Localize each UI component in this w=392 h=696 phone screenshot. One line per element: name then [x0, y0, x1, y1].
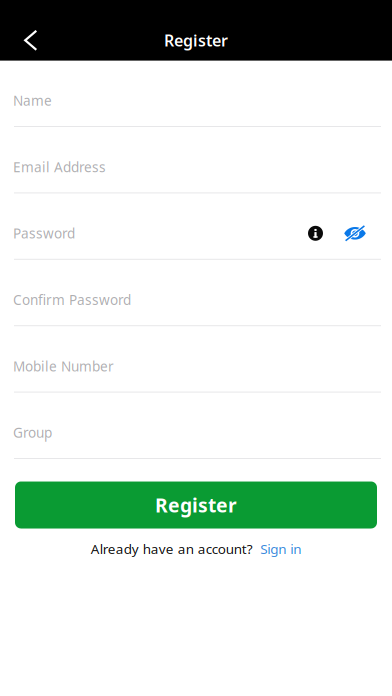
button[interactable]: Show password [344, 225, 366, 241]
button[interactable]: Password [0, 193, 392, 259]
staticText: Already have an account? [91, 540, 253, 558]
staticText: Email Address [13, 158, 106, 176]
button[interactable]: Password requirements [308, 226, 323, 241]
staticText: Group [13, 423, 52, 442]
button[interactable]: Register [15, 481, 377, 528]
staticText: Confirm Password [13, 290, 131, 309]
button[interactable]: Sign in [260, 540, 301, 558]
button[interactable]: Confirm Password [0, 260, 392, 325]
button[interactable]: Group [0, 393, 392, 458]
staticText: Password [13, 224, 75, 242]
button[interactable]: Name [0, 61, 392, 126]
staticText: Sign in [260, 540, 301, 558]
button[interactable]: Email Address [0, 127, 392, 192]
staticText: Register [155, 492, 237, 518]
staticText: Name [13, 91, 52, 110]
staticText: Register [164, 29, 228, 51]
staticText: Mobile Number [13, 357, 114, 375]
button[interactable]: Mobile Number [0, 326, 392, 392]
button[interactable]: Back [0, 20, 61, 61]
